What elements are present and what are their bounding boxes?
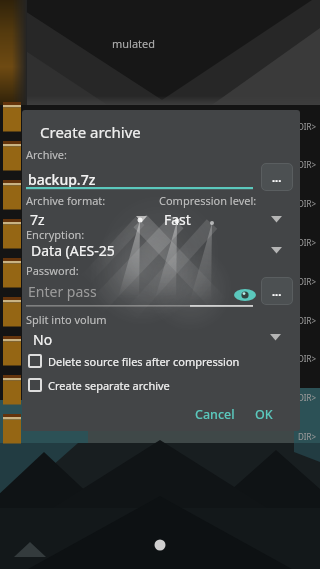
- staticText: DIR>: [298, 315, 317, 326]
- staticText: Split into volum: [26, 312, 107, 327]
- staticText: Compression level:: [159, 193, 257, 208]
- staticText: OK: [255, 406, 273, 423]
- staticText: No: [33, 330, 53, 349]
- staticText: 7z: [30, 210, 45, 229]
- staticText: ...: [272, 170, 282, 185]
- button[interactable]: ...: [261, 277, 293, 305]
- button[interactable]: backup.7z: [26, 168, 254, 190]
- button[interactable]: No: [26, 329, 287, 349]
- staticText: Cancel: [195, 406, 235, 423]
- staticText: Encryption:: [26, 227, 85, 242]
- button[interactable]: 7z: [26, 209, 150, 229]
- staticText: DIR>: [298, 237, 317, 248]
- staticText: Data (AES-25: [31, 241, 115, 260]
- staticText: DIR>: [298, 121, 317, 132]
- staticText: DIR>: [298, 431, 317, 442]
- staticText: DIR>: [298, 198, 317, 209]
- staticText: Enter pass: [28, 282, 97, 301]
- staticText: Create archive: [40, 122, 141, 142]
- button[interactable]: Fast: [159, 209, 287, 229]
- staticText: DIR>: [298, 159, 317, 170]
- button[interactable]: Create separate archive: [28, 375, 268, 397]
- button[interactable]: Delete source files after compression: [28, 351, 268, 373]
- button[interactable]: Data (AES-25: [26, 240, 287, 260]
- staticText: DIR>: [298, 353, 317, 364]
- button[interactable]: Cancel: [186, 402, 243, 426]
- staticText: DIR>: [298, 392, 317, 403]
- staticText: backup.7z: [28, 170, 96, 189]
- button[interactable]: Enter pass: [26, 280, 254, 306]
- staticText: Password:: [26, 263, 79, 278]
- staticText: Create separate archive: [48, 378, 170, 393]
- staticText: Fast: [164, 210, 191, 229]
- button[interactable]: OK: [248, 402, 280, 426]
- staticText: ...: [272, 284, 282, 299]
- staticText: Delete source files after compression: [48, 354, 240, 369]
- button[interactable]: ...: [261, 163, 293, 191]
- staticText: mulated: [112, 36, 156, 51]
- staticText: Archive format:: [26, 193, 106, 208]
- staticText: DIR>: [298, 276, 317, 287]
- staticText: Archive:: [26, 147, 68, 162]
